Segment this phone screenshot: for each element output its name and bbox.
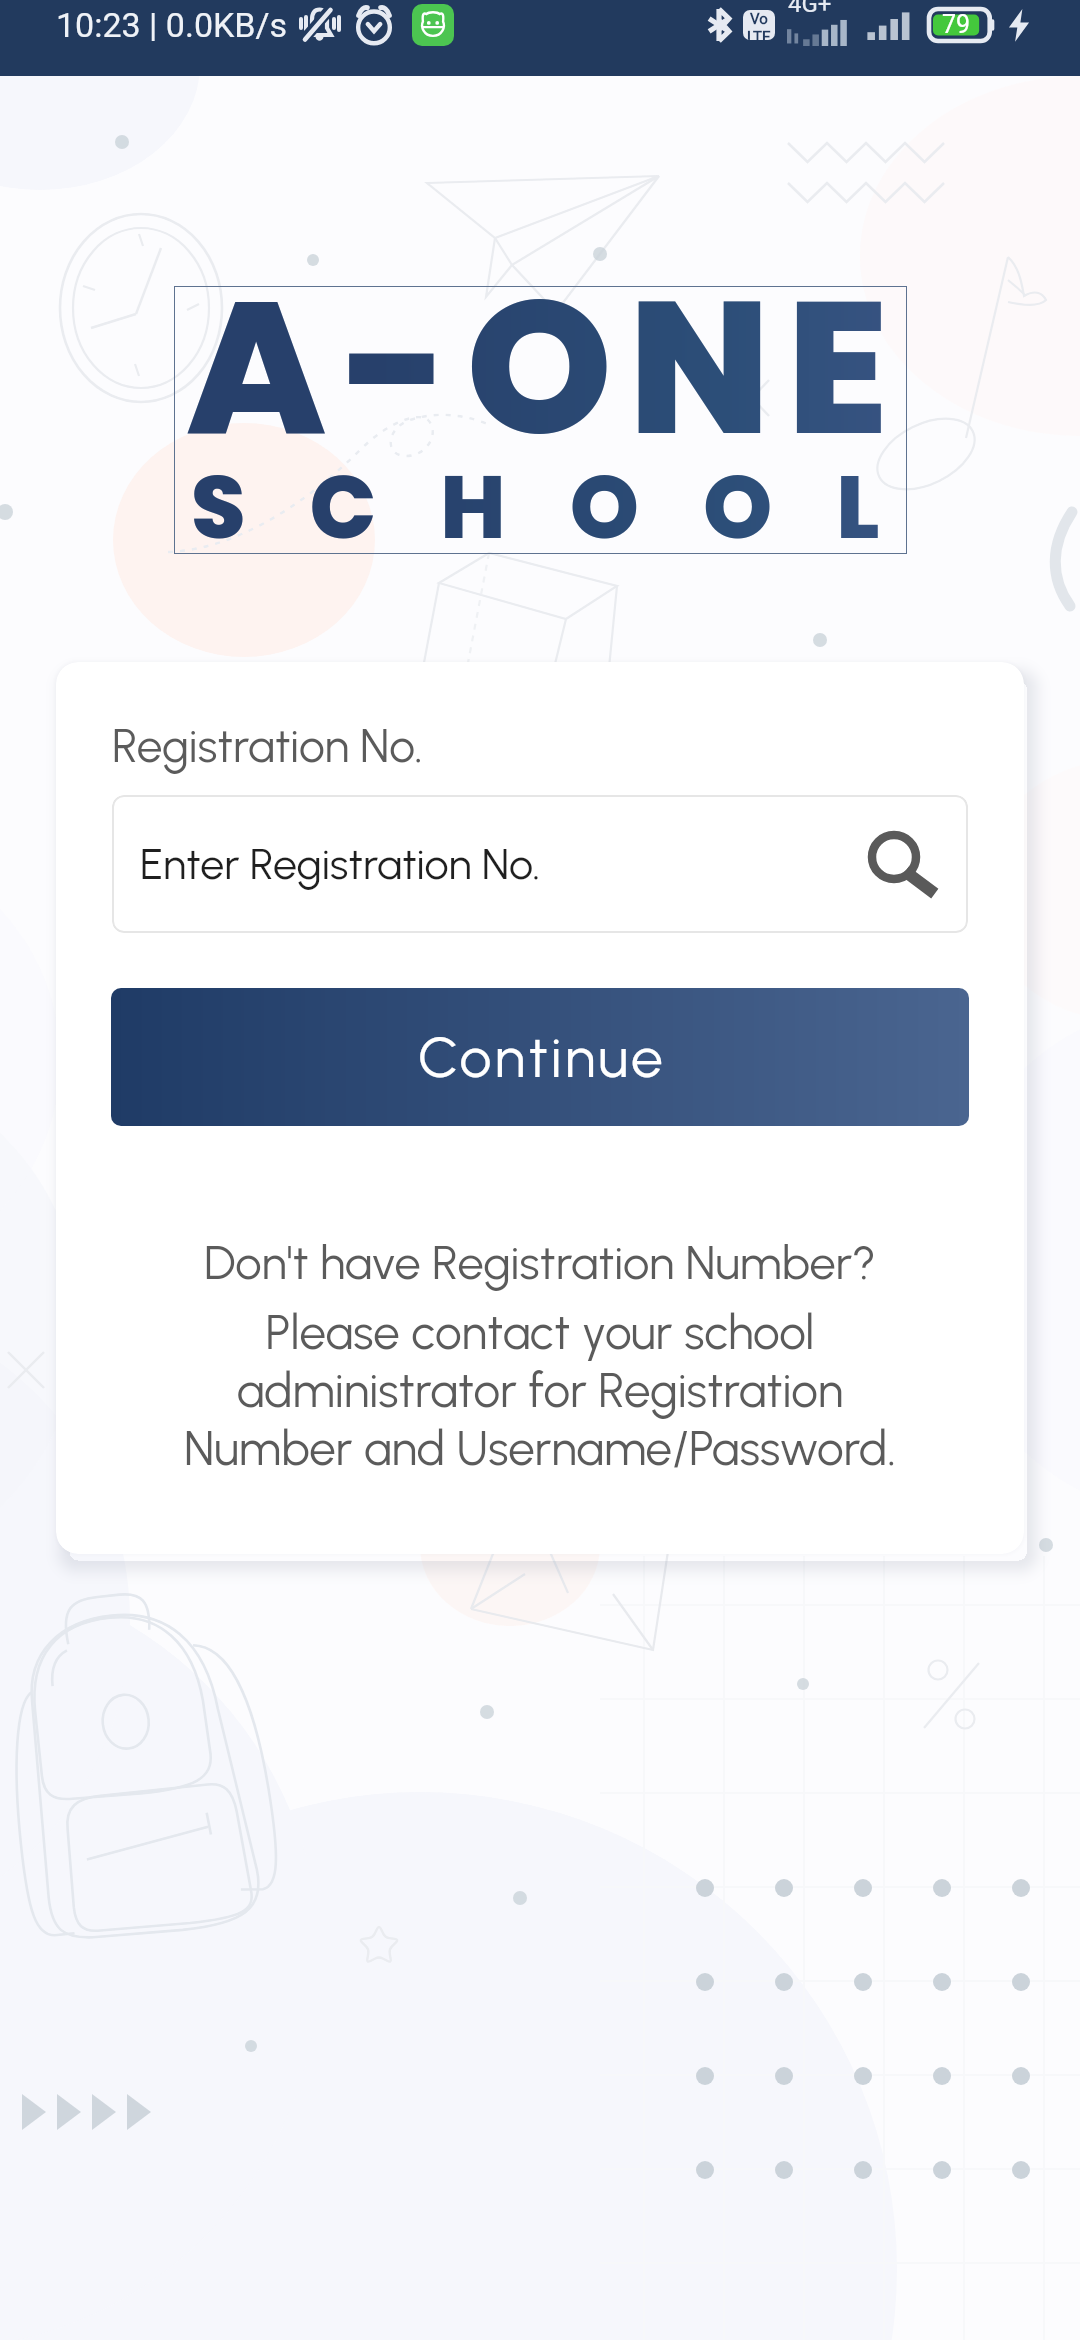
button[interactable]: Continue <box>111 988 969 1126</box>
staticText: Don't have Registration Number? <box>204 1234 876 1290</box>
staticText: 79 <box>942 10 971 39</box>
staticText: SCHOOL <box>191 446 1080 569</box>
staticText: 10:23 | 0.0KB/s <box>56 5 288 45</box>
staticText: Vo <box>750 10 768 28</box>
staticText: A-ONE <box>186 238 1080 498</box>
staticText: Enter Registration No. <box>140 838 541 890</box>
staticText: 4G+ <box>788 0 832 18</box>
staticText: Continue <box>418 1023 667 1091</box>
button[interactable]: Search <box>832 807 946 921</box>
button[interactable]: Enter Registration No. <box>112 795 968 933</box>
staticText: LTE <box>747 28 771 40</box>
staticText: Registration No. <box>112 718 423 773</box>
staticText: Please contact your school administrator… <box>160 1304 920 1477</box>
